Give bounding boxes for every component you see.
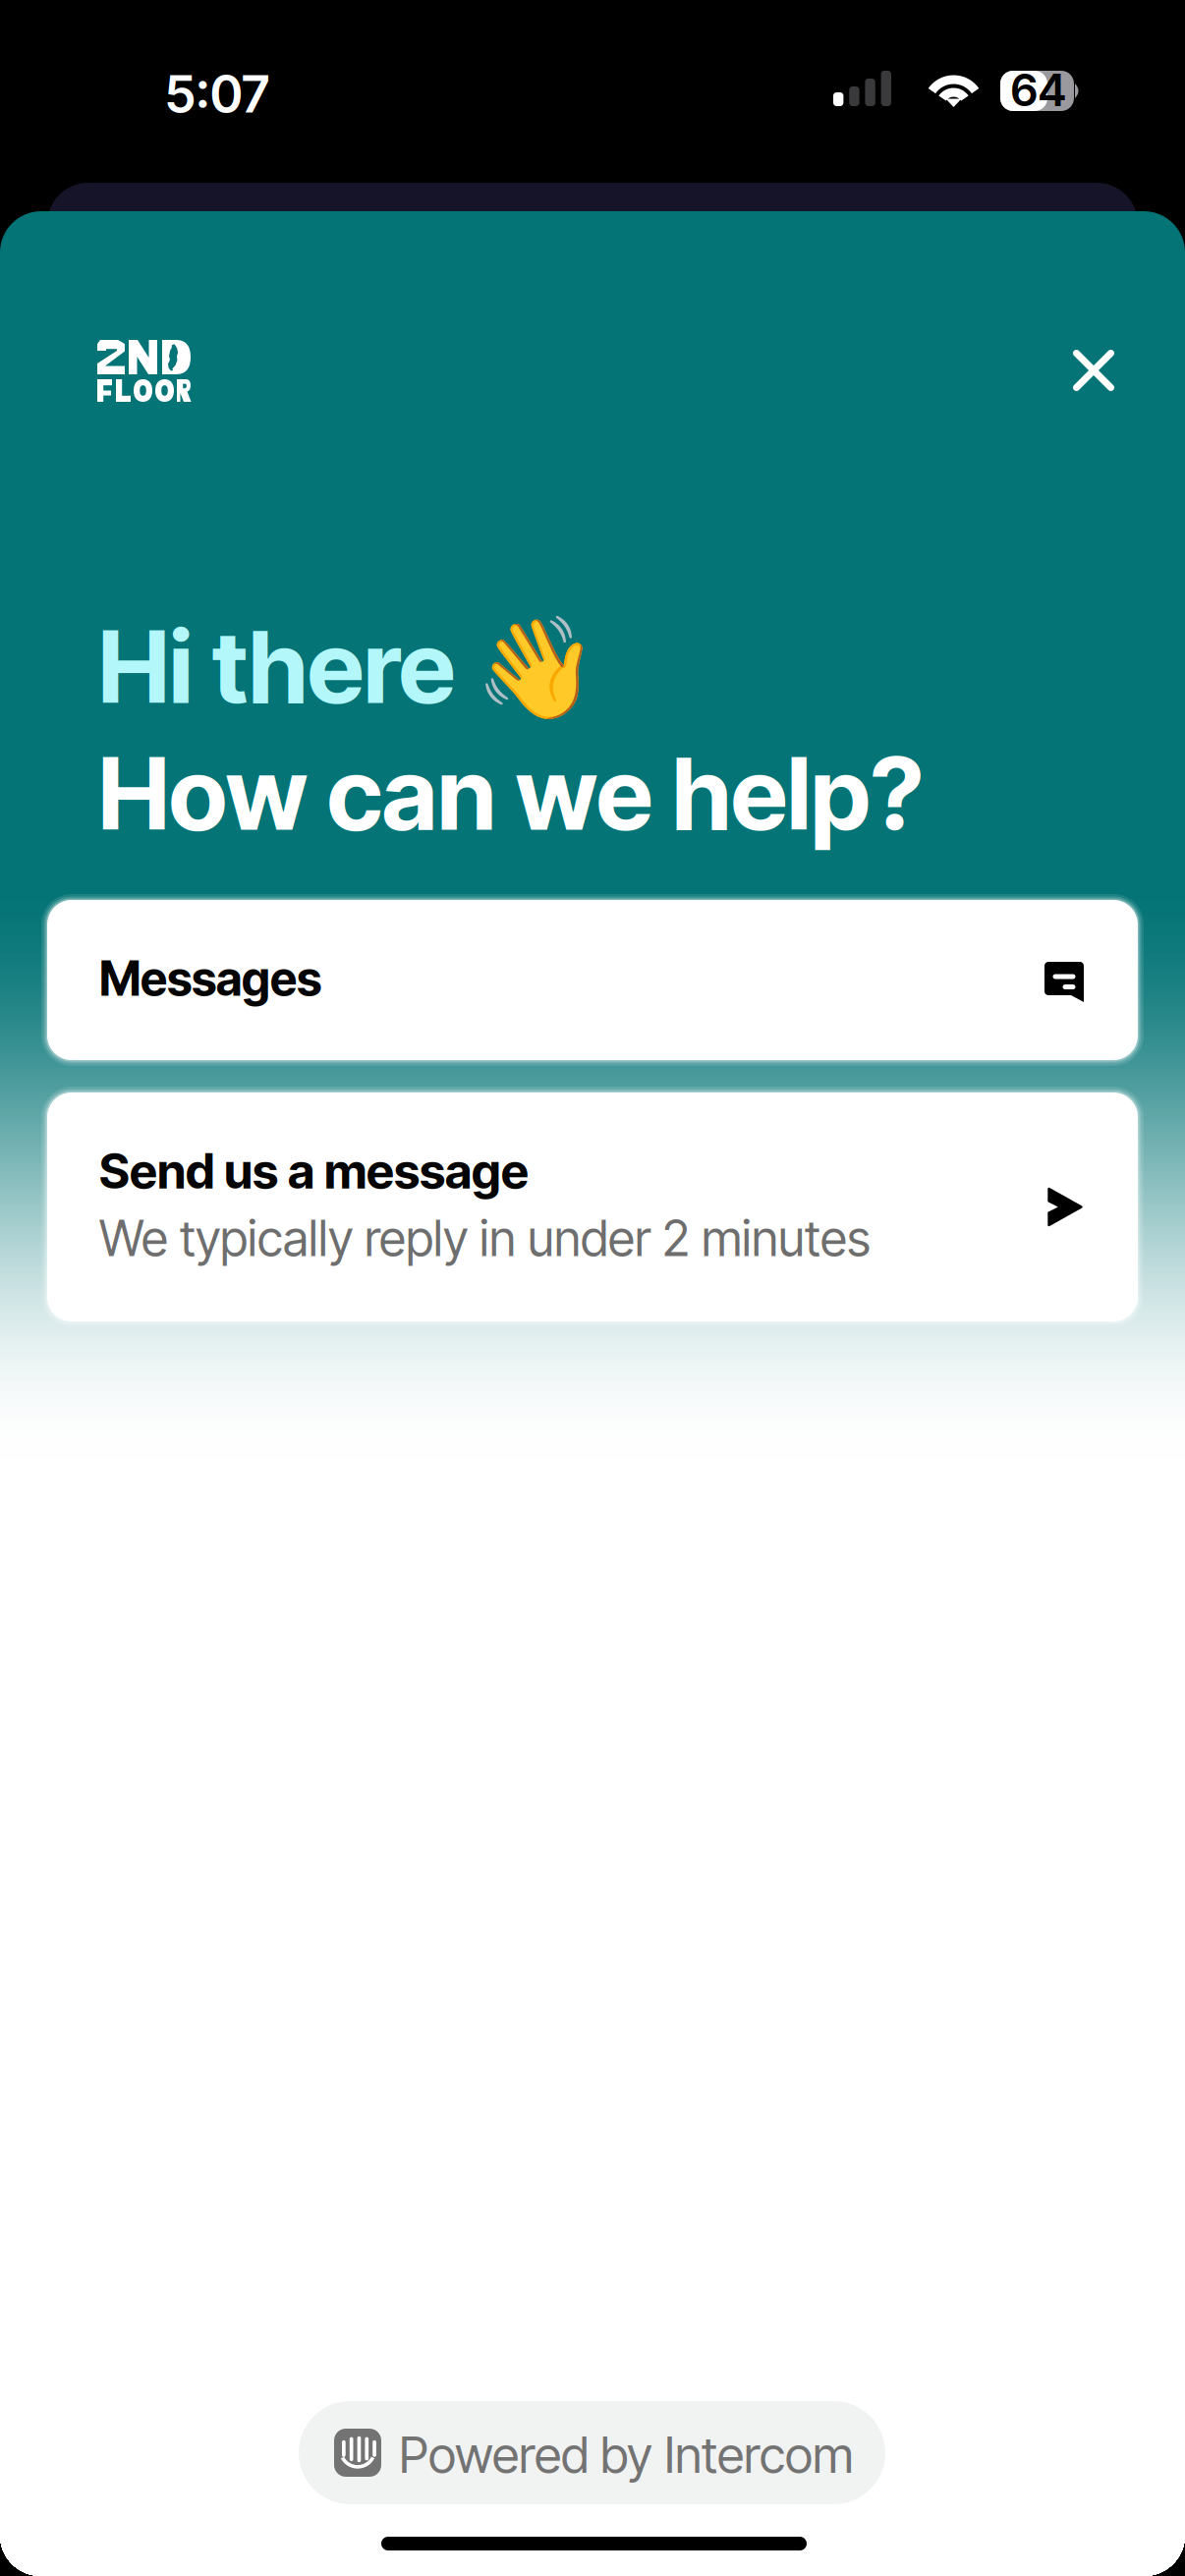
staticText: Send us a message <box>99 1142 529 1200</box>
button[interactable]: Send us a message <box>47 1092 1138 1321</box>
staticText: Powered by Intercom <box>399 2425 854 2485</box>
button[interactable]: Messages <box>47 900 1138 1060</box>
staticText: We typically reply in under 2 minutes <box>99 1208 871 1268</box>
staticText: Hi there 👋 <box>98 606 598 727</box>
staticText: How can we help? <box>98 733 924 853</box>
staticText: Messages <box>99 950 321 1007</box>
button[interactable]: Close <box>1044 321 1143 420</box>
staticText: 64 <box>1011 63 1066 117</box>
button[interactable]: Powered by Intercom <box>299 2401 885 2504</box>
staticText: 5:07 <box>165 63 269 125</box>
